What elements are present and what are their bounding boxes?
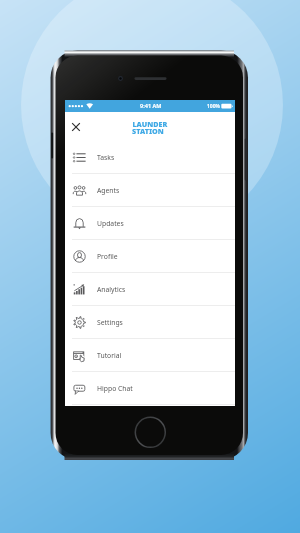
button[interactable]: Settings	[65, 306, 235, 339]
button[interactable]: Analytics	[65, 273, 235, 306]
button[interactable]: Profile	[65, 240, 235, 273]
staticText: LAUNDER	[132, 118, 168, 129]
staticText: STATION	[132, 125, 164, 135]
staticText: Tasks	[97, 153, 115, 162]
button[interactable]: Tutorial	[65, 339, 235, 372]
staticText: Settings	[97, 318, 123, 327]
staticText: Profile	[97, 252, 118, 261]
staticText: Updates	[97, 219, 124, 228]
staticText: Agents	[97, 186, 120, 195]
button[interactable]: Close menu	[67, 118, 84, 135]
button[interactable]: Hippo Chat	[65, 372, 235, 405]
staticText: Tutorial	[97, 351, 122, 360]
button[interactable]: Agents	[65, 174, 235, 207]
button[interactable]: Tasks	[65, 141, 235, 174]
staticText: Hippo Chat	[97, 384, 133, 393]
button[interactable]: Updates	[65, 207, 235, 240]
staticText: 100%	[207, 103, 220, 110]
staticText: Analytics	[97, 285, 126, 294]
staticText: 9:41 AM	[140, 102, 162, 110]
